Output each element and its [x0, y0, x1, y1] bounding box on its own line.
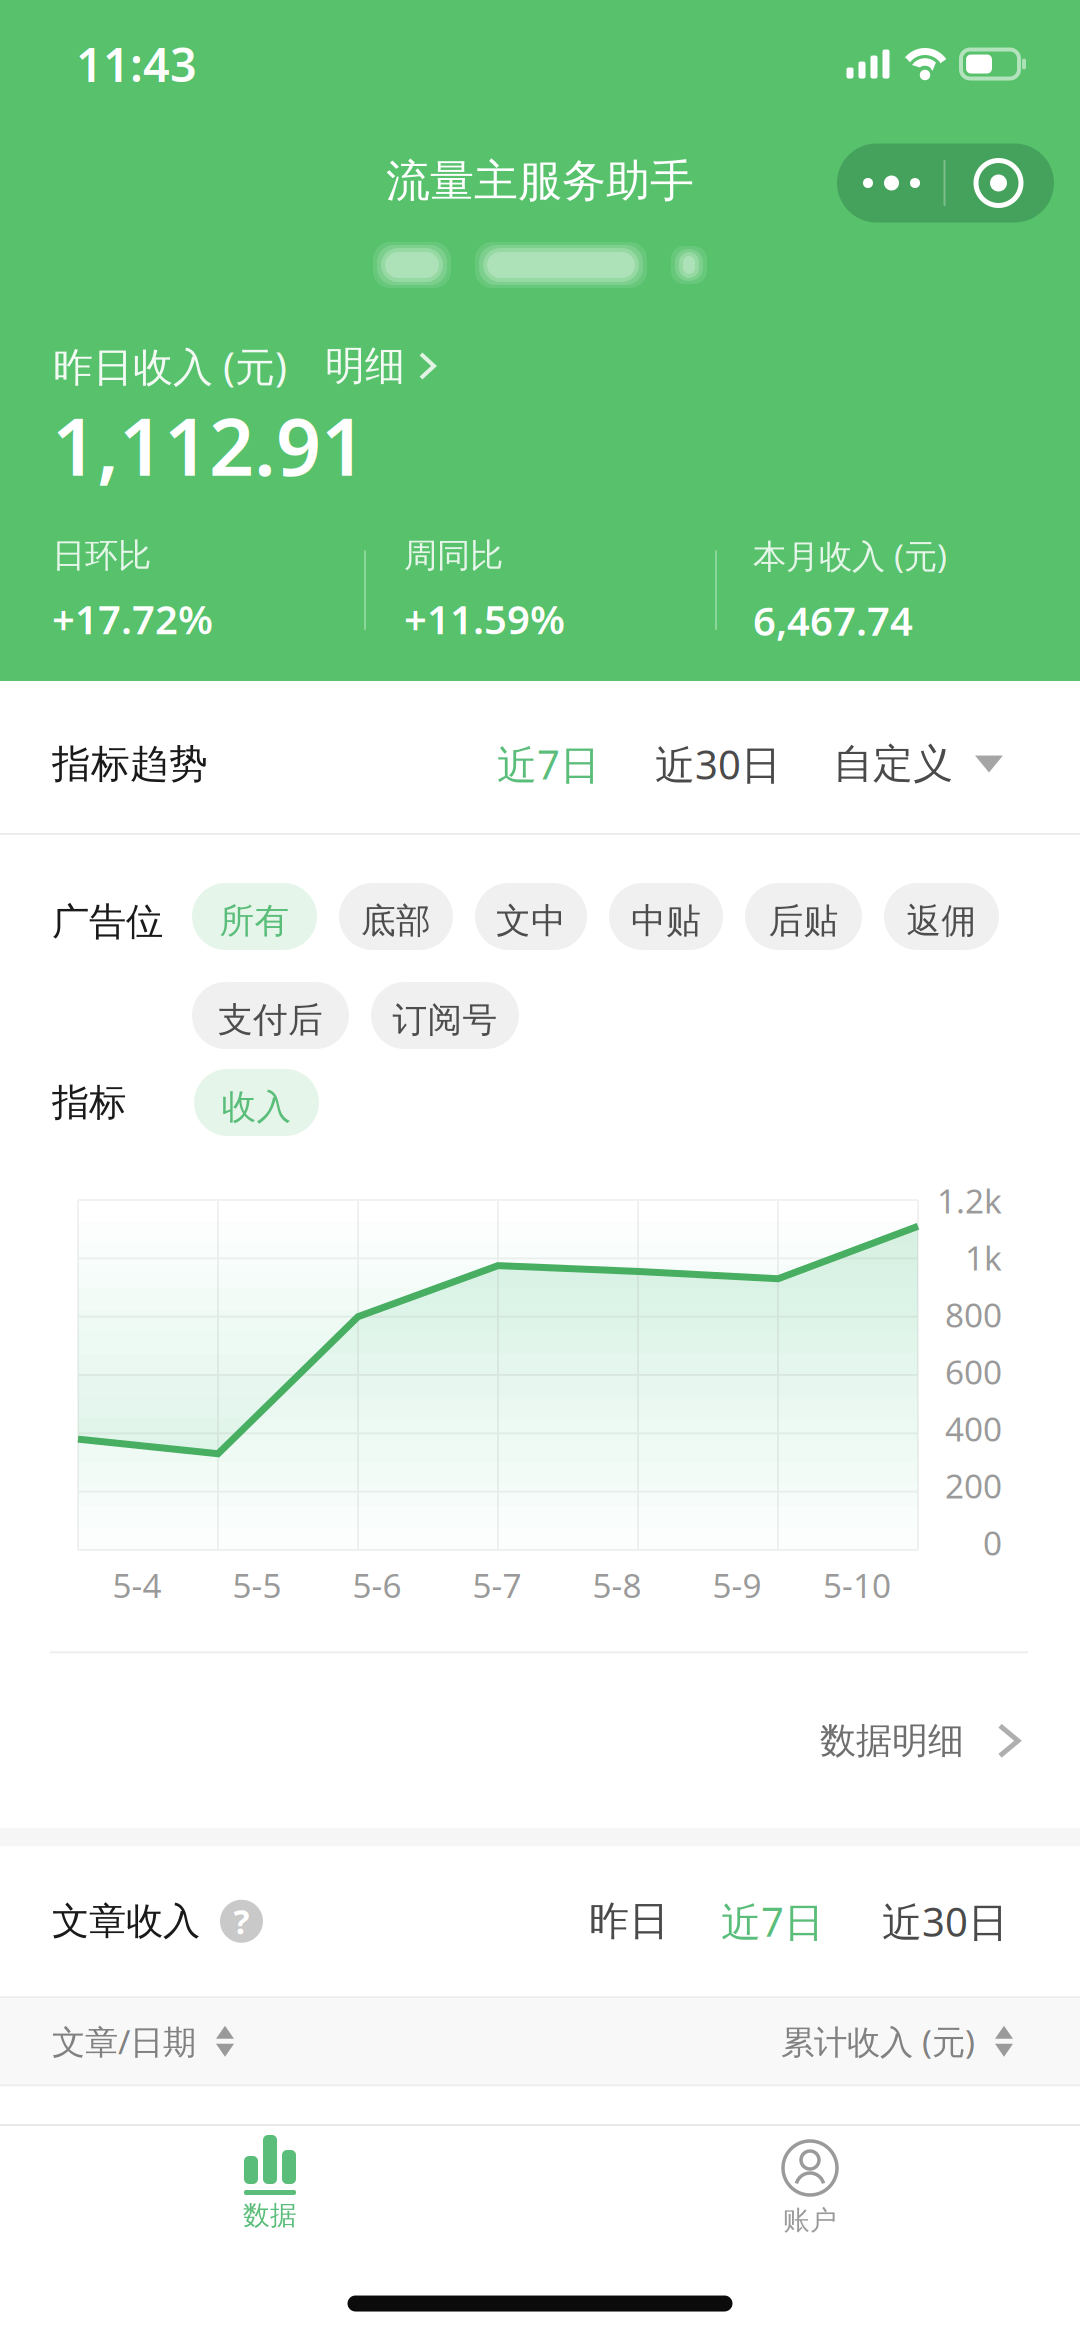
staticText: 400 [945, 1406, 1002, 1451]
staticText: 5-6 [352, 1563, 401, 1607]
staticText: 5-8 [592, 1563, 641, 1607]
staticText: 数据 [243, 2199, 297, 2232]
button[interactable]: 后贴 [745, 883, 862, 950]
button[interactable]: 收入 [194, 1069, 319, 1136]
staticText: 600 [945, 1349, 1002, 1394]
staticText: 明细 [325, 341, 405, 390]
button[interactable]: 文章/日期 [52, 2019, 234, 2063]
button[interactable]: Help [200, 1899, 263, 1943]
staticText: 底部 [361, 900, 431, 942]
button[interactable]: 账户 [675, 2126, 945, 2270]
button[interactable]: 昨日 [581, 1897, 677, 1946]
staticText: 近30日 [655, 737, 781, 790]
staticText: 周同比 [404, 535, 503, 576]
button[interactable]: 自定义 [791, 739, 1003, 788]
staticText: 6,467.74 [753, 594, 913, 647]
button[interactable]: 订阅号 [371, 982, 519, 1049]
staticText: 累计收入 (元) [781, 2019, 975, 2063]
button[interactable]: 数据 [135, 2126, 405, 2270]
staticText: 200 [945, 1463, 1002, 1508]
staticText: 近30日 [882, 1895, 1008, 1948]
staticText: 返佣 [906, 900, 976, 942]
staticText: 数据明细 [820, 1719, 964, 1763]
staticText: 5-5 [232, 1563, 281, 1607]
button[interactable]: 近7日 [487, 737, 610, 790]
staticText: ? [233, 1899, 249, 1943]
staticText: 0 [983, 1520, 1002, 1565]
button[interactable]: 支付后 [192, 982, 349, 1049]
staticText: 5-10 [823, 1563, 891, 1607]
staticText: 所有 [219, 900, 289, 942]
button[interactable]: 数据明细 [0, 1653, 1080, 1828]
button[interactable]: 所有 [192, 883, 317, 950]
staticText: 1,112.91 [52, 393, 366, 497]
button[interactable]: 文中 [475, 883, 587, 950]
staticText: 昨日收入 (元) [53, 339, 287, 392]
staticText: +17.72% [52, 592, 213, 645]
staticText: 日环比 [52, 535, 151, 576]
button[interactable]: 底部 [339, 883, 453, 950]
button[interactable]: 昨日收入 (元) [0, 342, 1080, 390]
button[interactable]: 近7日 [677, 1895, 832, 1948]
staticText: 支付后 [218, 999, 323, 1041]
staticText: 中贴 [631, 900, 701, 942]
staticText: 收入 [221, 1086, 291, 1128]
staticText: 近7日 [497, 737, 600, 790]
staticText: 5-9 [712, 1563, 761, 1607]
button[interactable]: More options [837, 143, 1054, 222]
staticText: 文章收入 [52, 1898, 200, 1944]
staticText: 流量主服务助手 [386, 154, 694, 208]
staticText: 5-7 [472, 1563, 521, 1607]
staticText: 自定义 [833, 739, 953, 788]
staticText: 指标趋势 [52, 740, 208, 788]
staticText: 文中 [496, 900, 566, 942]
button[interactable]: 中贴 [609, 883, 723, 950]
staticText: 1k [965, 1235, 1002, 1280]
staticText: 本月收入 (元) [753, 533, 947, 578]
staticText: 广告位 [52, 899, 163, 945]
staticText: 800 [945, 1292, 1002, 1337]
staticText: +11.59% [404, 592, 565, 645]
button[interactable]: 返佣 [884, 883, 999, 950]
staticText: 文章/日期 [52, 2019, 196, 2063]
staticText: 5-4 [112, 1563, 161, 1607]
button[interactable]: 累计收入 (元) [781, 2019, 1013, 2063]
staticText: 后贴 [768, 900, 838, 942]
staticText: 11:43 [76, 33, 197, 95]
staticText: 账户 [783, 2204, 837, 2237]
button[interactable]: 近30日 [832, 1895, 1016, 1948]
staticText: 指标 [52, 1080, 126, 1125]
staticText: 昨日 [589, 1897, 669, 1946]
staticText: 1.2k [937, 1178, 1002, 1223]
button[interactable]: 近30日 [610, 737, 791, 790]
staticText: 订阅号 [392, 999, 497, 1041]
staticText: 近7日 [721, 1895, 824, 1948]
